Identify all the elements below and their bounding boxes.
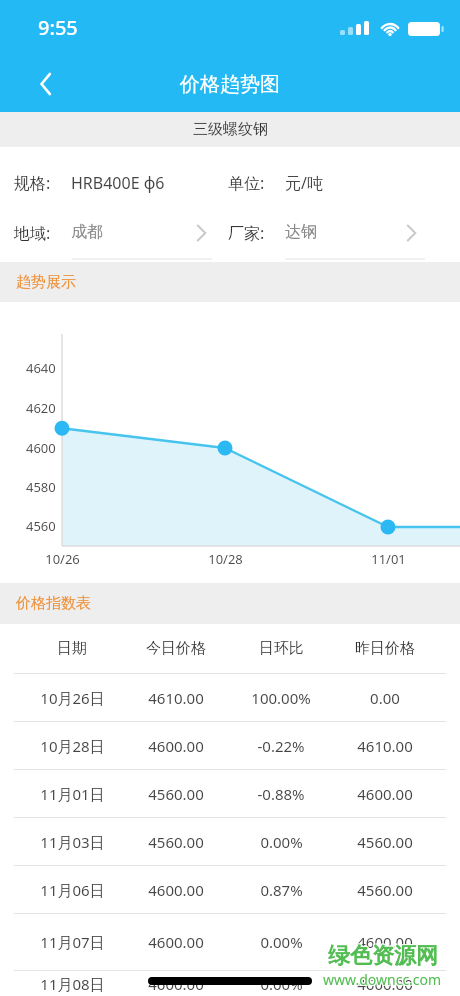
staticText: 绿色资源网 [327, 941, 437, 969]
button[interactable] [32, 70, 60, 98]
staticText: 4580 [26, 478, 56, 496]
staticText: 元/吨 [285, 172, 323, 194]
button[interactable]: 11月03日 [0, 818, 460, 865]
staticText: 4610.00 [357, 736, 413, 756]
staticText: 4560.00 [148, 832, 204, 852]
staticText: 0.00 [370, 688, 400, 708]
staticText: 厂家: [228, 222, 265, 244]
staticText: 11月06日 [40, 880, 105, 900]
staticText: 100.00% [251, 688, 311, 708]
staticText: 4600.00 [357, 784, 413, 804]
button[interactable]: 11月08日 [0, 971, 460, 996]
staticText: 绿色资源网 [329, 943, 439, 971]
staticText: 0.87% [260, 880, 303, 900]
staticText: 4600.00 [357, 932, 413, 952]
staticText: 10月28日 [40, 736, 105, 756]
button[interactable]: 11月01日 [0, 770, 460, 817]
staticText: 4600 [26, 439, 56, 457]
staticText: 11月07日 [40, 932, 105, 952]
button[interactable]: 10月26日 [0, 674, 460, 721]
staticText: 10/26 [45, 550, 80, 568]
staticText: 4560.00 [357, 832, 413, 852]
staticText: 单位: [228, 172, 265, 194]
staticText: 10月26日 [40, 688, 105, 708]
button[interactable]: 10月28日 [0, 722, 460, 769]
staticText: 趋势展示 [16, 273, 76, 292]
staticText: 昨日价格 [355, 639, 415, 658]
staticText: 三级螺纹钢 [193, 120, 268, 139]
staticText: 价格趋势图 [180, 72, 280, 97]
staticText: -0.22% [257, 736, 305, 756]
staticText: 4600.00 [148, 736, 204, 756]
staticText: 4560.00 [148, 784, 204, 804]
staticText: 4640 [26, 359, 56, 377]
staticText: 4560.00 [357, 880, 413, 900]
staticText: 达钢 [285, 222, 317, 242]
staticText: 9:55 [38, 14, 78, 41]
button[interactable]: 厂家: [214, 211, 460, 255]
staticText: 0.00% [260, 932, 303, 952]
button[interactable]: 11月07日 [0, 914, 460, 970]
staticText: 日环比 [259, 639, 304, 658]
staticText: 日期 [57, 639, 87, 658]
staticText: 地域: [14, 222, 51, 244]
staticText: 规格: [14, 172, 51, 194]
staticText: 4620 [26, 399, 56, 417]
staticText: 0.00% [260, 832, 303, 852]
staticText: 11/01 [371, 550, 406, 568]
staticText: 绿色资源网 [327, 943, 437, 971]
staticText: 4600.00 [148, 974, 204, 994]
staticText: 4600.00 [148, 880, 204, 900]
staticText: 11月08日 [40, 974, 105, 994]
staticText: 成都 [71, 222, 103, 242]
staticText: www.downcc.com [322, 971, 441, 990]
staticText: www.downcc.com [322, 969, 441, 988]
staticText: 4610.00 [148, 688, 204, 708]
staticText: 0.00% [260, 974, 303, 994]
staticText: HRB400E φ6 [71, 172, 165, 194]
staticText: 绿色资源网 [329, 941, 439, 969]
staticText: 4560 [26, 517, 56, 535]
staticText: www.downcc.com [324, 969, 443, 988]
staticText: 10/28 [208, 550, 243, 568]
button[interactable]: 11月06日 [0, 866, 460, 913]
staticText: 4600.00 [357, 974, 413, 994]
staticText: 11月03日 [40, 832, 105, 852]
staticText: www.downcc.com [324, 971, 443, 990]
staticText: 绿色资源网 [328, 942, 438, 970]
staticText: 价格指数表 [16, 594, 91, 613]
staticText: 11月01日 [40, 784, 105, 804]
staticText: -0.88% [257, 784, 305, 804]
button[interactable]: 地域: [0, 211, 214, 255]
staticText: 4600.00 [148, 932, 204, 952]
staticText: www.downcc.com [323, 970, 442, 989]
staticText: 今日价格 [146, 639, 206, 658]
